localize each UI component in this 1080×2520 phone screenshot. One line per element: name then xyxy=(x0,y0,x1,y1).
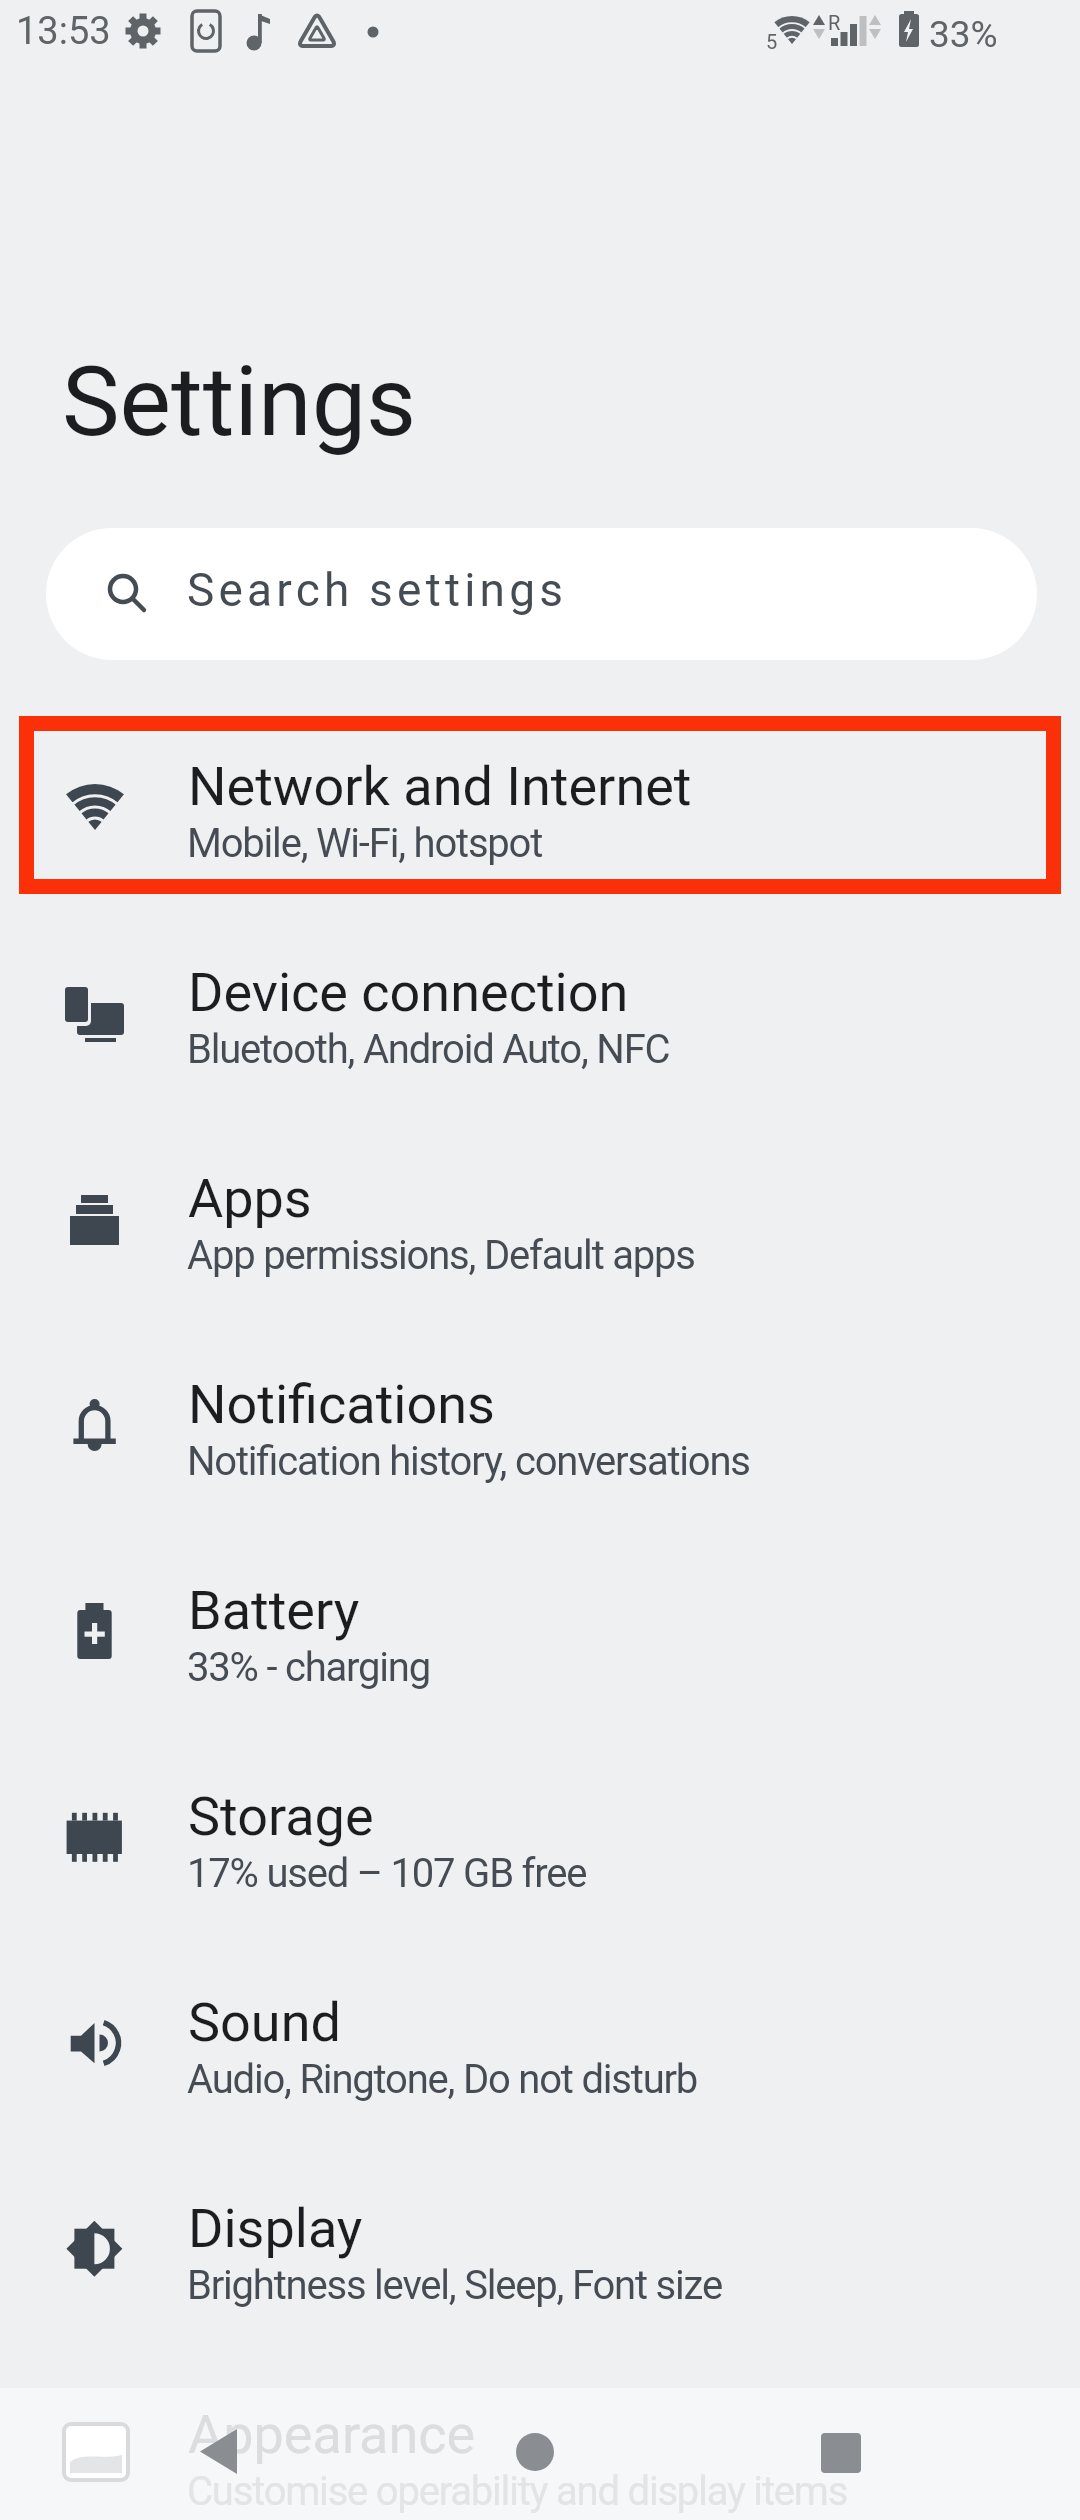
staticText: Customise operability and display items xyxy=(187,2468,848,2515)
staticText: Audio, Ringtone, Do not disturb xyxy=(187,2056,698,2103)
staticText: Mobile, Wi-Fi, hotspot xyxy=(187,820,543,867)
staticText: Notifications xyxy=(188,1373,495,1436)
button[interactable] xyxy=(0,1919,1080,2119)
staticText: Appearance xyxy=(188,2403,476,2466)
staticText: 5 xyxy=(766,30,778,53)
button[interactable] xyxy=(150,2398,290,2510)
button[interactable] xyxy=(771,2398,911,2510)
staticText: 33% xyxy=(929,13,998,56)
button[interactable] xyxy=(0,683,1080,883)
staticText: Search settings xyxy=(187,563,568,617)
staticText: Network and Internet xyxy=(188,755,692,818)
staticText: Notification history, conversations xyxy=(187,1438,750,1485)
staticText: R xyxy=(828,11,841,34)
staticText: Apps xyxy=(188,1167,312,1230)
staticText: Sound xyxy=(188,1991,341,2054)
button[interactable] xyxy=(465,2398,605,2510)
staticText: 33% - charging xyxy=(187,1644,431,1691)
staticText: Bluetooth, Android Auto, NFC xyxy=(187,1026,670,1073)
button[interactable] xyxy=(0,2125,1080,2325)
staticText: Storage xyxy=(188,1785,374,1848)
staticText: Display xyxy=(188,2197,363,2260)
button[interactable] xyxy=(0,1713,1080,1913)
button[interactable] xyxy=(0,889,1080,1089)
staticText: Battery xyxy=(188,1579,360,1642)
button[interactable] xyxy=(0,1507,1080,1707)
staticText: App permissions, Default apps xyxy=(187,1232,695,1279)
button[interactable] xyxy=(0,1095,1080,1295)
button[interactable] xyxy=(0,1301,1080,1501)
staticText: Brightness level, Sleep, Font size xyxy=(187,2262,722,2309)
staticText: 17% used – 107 GB free xyxy=(187,1850,587,1897)
button[interactable] xyxy=(46,528,1037,660)
staticText: 13:53 xyxy=(16,9,111,54)
staticText: Settings xyxy=(62,345,417,459)
staticText: Device connection xyxy=(188,961,629,1024)
